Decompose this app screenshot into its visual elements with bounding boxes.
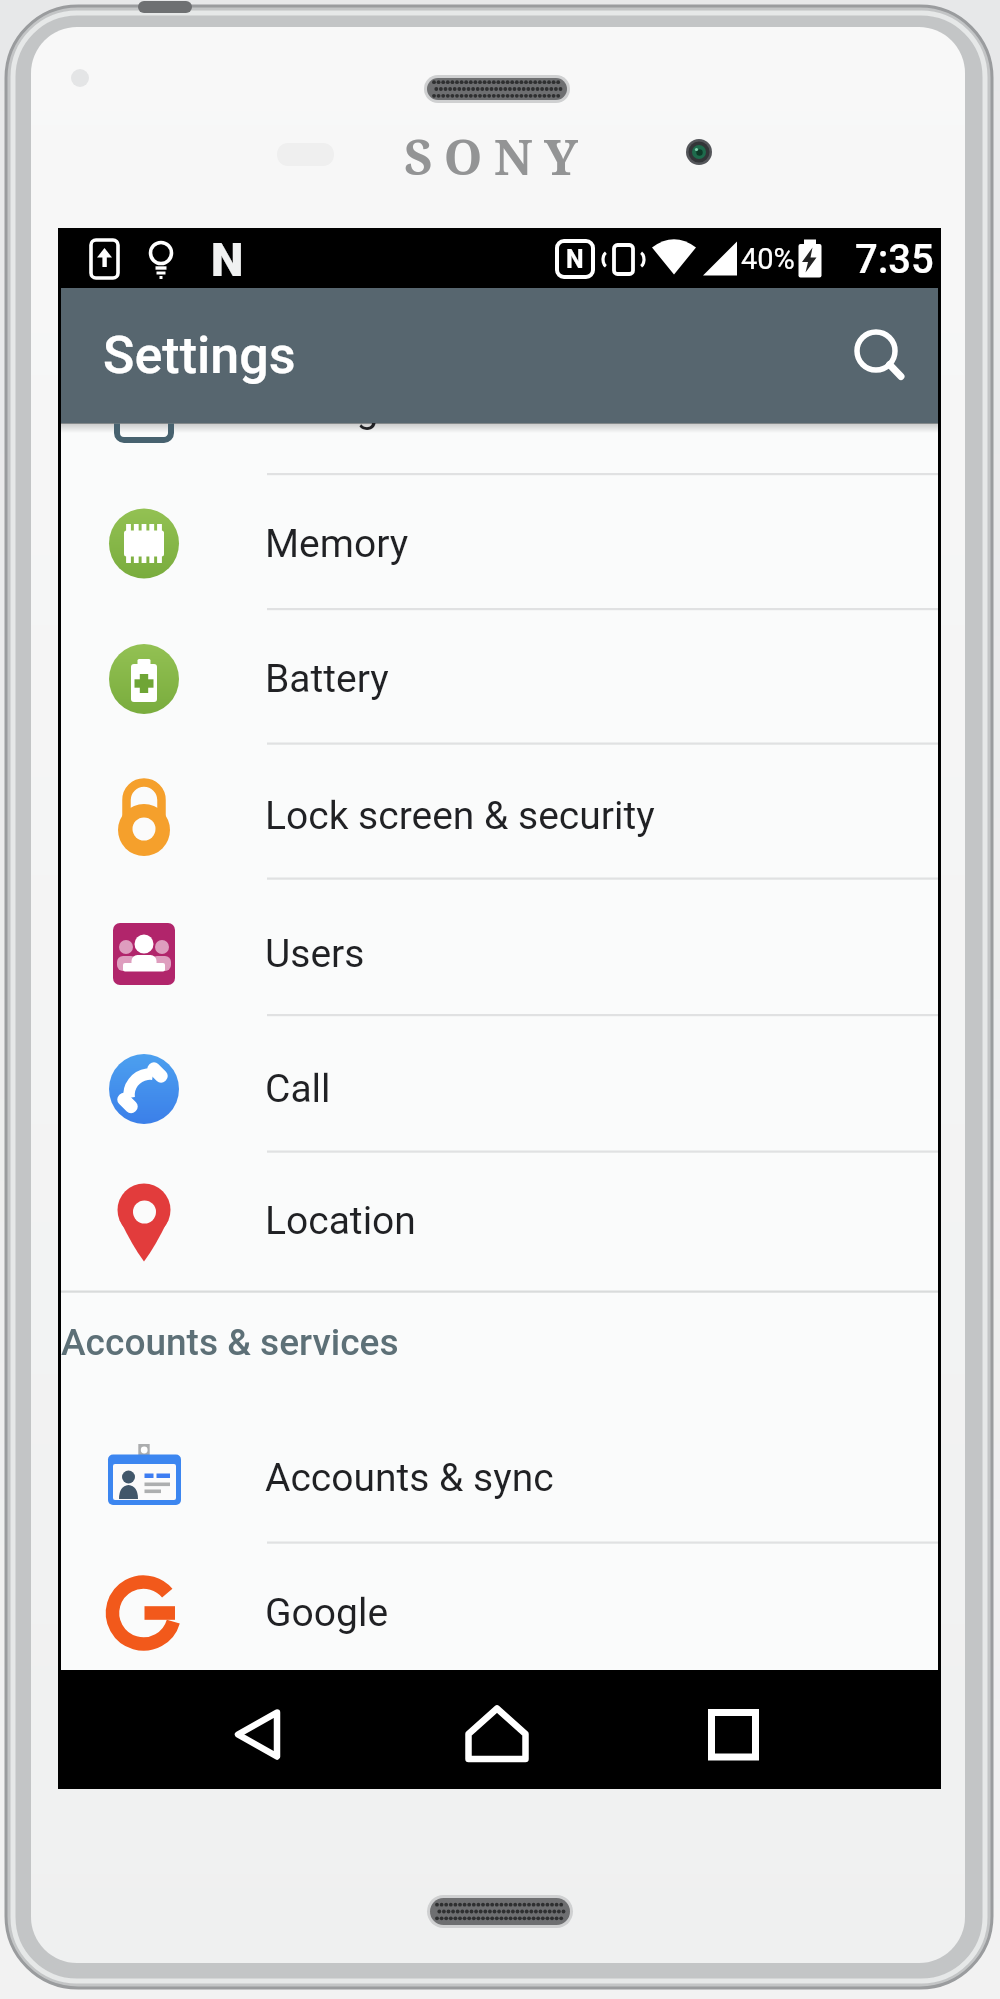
staticText: 40% <box>741 242 795 276</box>
button[interactable] <box>420 1674 575 1784</box>
button[interactable]: Lock screen & security <box>61 749 938 883</box>
staticText: Accounts & services <box>61 1321 399 1364</box>
button[interactable]: Users <box>61 887 938 1021</box>
button[interactable]: Location <box>61 1154 938 1288</box>
staticText: Storage <box>265 423 400 432</box>
staticText: N <box>566 245 584 274</box>
staticText: Settings <box>103 325 296 386</box>
button[interactable] <box>180 1674 335 1784</box>
button[interactable]: Memory <box>61 477 938 611</box>
staticText: Lock screen & security <box>265 793 655 839</box>
button[interactable] <box>655 1674 810 1784</box>
staticText: Call <box>265 1066 331 1112</box>
staticText: Battery <box>265 656 389 702</box>
staticText: 7:35 <box>855 236 934 282</box>
button[interactable] <box>838 312 918 392</box>
staticText: Users <box>265 931 365 977</box>
staticText: Memory <box>265 521 409 567</box>
button[interactable]: Battery <box>61 612 938 746</box>
button[interactable]: Accounts & sync <box>61 1411 938 1545</box>
staticText: Location <box>265 1198 416 1244</box>
button[interactable]: Call <box>61 1022 938 1156</box>
staticText: N <box>211 233 244 285</box>
staticText: SONY <box>404 123 590 183</box>
staticText: Accounts & sync <box>265 1455 554 1501</box>
staticText: Google <box>265 1590 389 1636</box>
button[interactable]: Google <box>61 1546 938 1680</box>
